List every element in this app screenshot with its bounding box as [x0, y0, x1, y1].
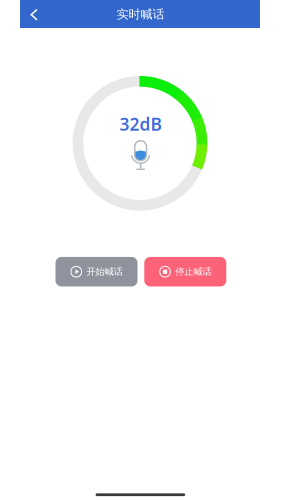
staticText: 开始喊话 [87, 266, 123, 277]
staticText: 32dB [119, 112, 161, 135]
staticText: 停止喊话 [175, 266, 211, 277]
button[interactable]: Back [19, 1, 49, 29]
button[interactable]: 停止喊话 [144, 257, 226, 286]
button[interactable]: 开始喊话 [55, 257, 137, 286]
staticText: 实时喊话 [117, 7, 165, 21]
